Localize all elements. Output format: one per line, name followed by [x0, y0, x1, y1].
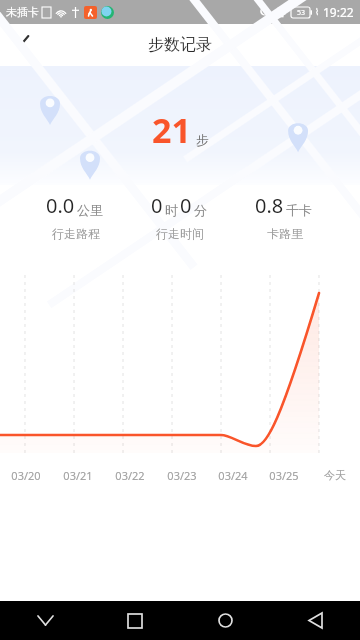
button[interactable]: Home — [180, 601, 270, 640]
staticText: 卡路里 — [267, 226, 303, 241]
staticText: 步 — [196, 132, 209, 148]
staticText: 03/24 — [218, 468, 248, 483]
staticText: 0 — [151, 192, 163, 219]
staticText: ⌇ — [315, 7, 320, 17]
staticText: 03/25 — [269, 468, 299, 483]
staticText: 19:22 — [323, 4, 354, 20]
button[interactable]: 0.8 — [255, 192, 314, 241]
staticText: 步数记录 — [148, 35, 212, 55]
button[interactable]: Hide navigation bar — [0, 601, 90, 640]
staticText: 0.0 — [46, 192, 75, 219]
staticText: 21 — [152, 107, 191, 153]
staticText: 行走路程 — [52, 226, 100, 241]
button[interactable]: Back — [0, 24, 48, 66]
staticText: 分 — [194, 202, 207, 218]
staticText: 0 — [180, 192, 192, 219]
staticText: 03/20 — [11, 468, 41, 483]
staticText: 公里 — [77, 202, 103, 218]
staticText: 03/22 — [115, 468, 145, 483]
staticText: 今天 — [324, 468, 346, 482]
button[interactable]: 0 — [151, 192, 209, 241]
staticText: 0.8 — [255, 192, 284, 219]
button[interactable]: Back — [270, 601, 360, 640]
button[interactable]: 0.0 — [46, 192, 105, 241]
staticText: 03/21 — [63, 468, 93, 483]
staticText: 时 — [165, 202, 178, 218]
button[interactable]: Recent apps — [90, 601, 180, 640]
staticText: 千卡 — [286, 202, 312, 218]
staticText: 行走时间 — [156, 226, 204, 241]
staticText: 未插卡 — [6, 5, 39, 19]
staticText: 53 — [297, 8, 306, 18]
staticText: 03/23 — [167, 468, 197, 483]
